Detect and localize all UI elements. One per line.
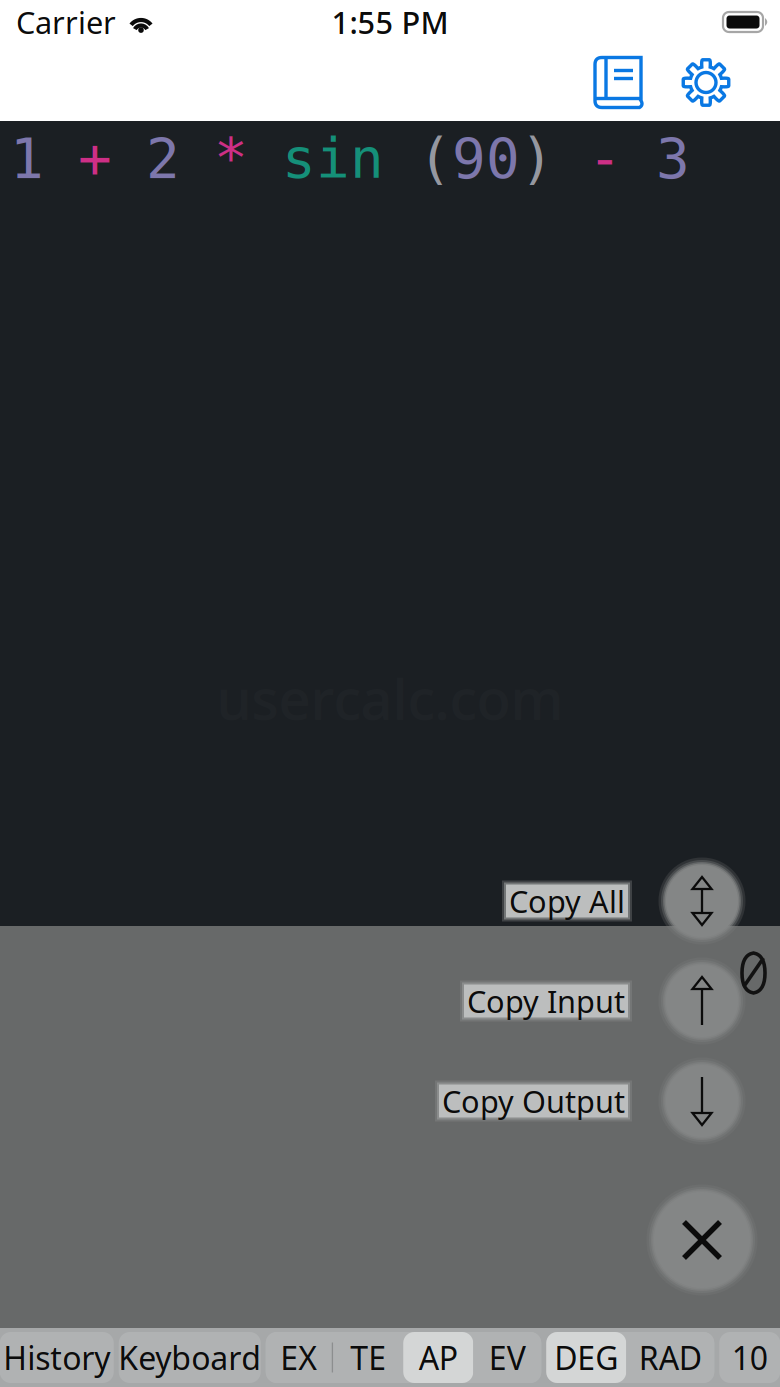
button[interactable]: History xyxy=(581,44,655,121)
button[interactable]: History xyxy=(0,1332,114,1383)
button[interactable]: Copy All xyxy=(660,859,744,943)
staticText: AP xyxy=(419,1336,458,1379)
staticText: EV xyxy=(489,1336,526,1379)
button[interactable]: 10 xyxy=(719,1332,780,1383)
staticText: Carrier xyxy=(16,2,116,42)
staticText: Copy All xyxy=(509,881,625,921)
staticText: DEG xyxy=(554,1336,618,1379)
button[interactable]: EX xyxy=(266,1332,332,1383)
staticText: RAD xyxy=(639,1336,702,1379)
staticText: sin xyxy=(282,126,418,190)
button[interactable]: DEG xyxy=(546,1332,626,1383)
staticText: 10 xyxy=(732,1336,768,1379)
staticText: Copy Input xyxy=(467,981,625,1021)
staticText: 1 xyxy=(10,126,78,190)
staticText: History xyxy=(3,1336,110,1379)
staticText: ( xyxy=(418,126,452,190)
button[interactable]: Copy Input xyxy=(660,959,744,1043)
staticText: - xyxy=(588,126,656,190)
button[interactable]: Copy Output xyxy=(435,1080,632,1121)
staticText: 2 xyxy=(146,126,214,190)
staticText: TE xyxy=(350,1336,386,1379)
button[interactable]: Clear xyxy=(648,1186,756,1294)
button[interactable]: AP xyxy=(403,1332,473,1383)
staticText: EX xyxy=(280,1336,317,1379)
staticText: 3 xyxy=(656,126,690,190)
button[interactable]: Copy Input xyxy=(460,980,632,1021)
button[interactable]: TE xyxy=(333,1332,403,1383)
button[interactable]: EV xyxy=(473,1332,541,1383)
staticText: Copy Output xyxy=(442,1081,625,1121)
button[interactable]: Copy Output xyxy=(660,1059,744,1143)
staticText: ) xyxy=(520,126,588,190)
staticText: + xyxy=(78,126,146,190)
staticText: Keyboard xyxy=(118,1336,261,1379)
button[interactable]: Keyboard xyxy=(119,1332,261,1383)
button[interactable]: RAD xyxy=(626,1332,714,1383)
button[interactable]: Copy All xyxy=(502,880,632,921)
button[interactable]: Settings xyxy=(669,44,743,121)
staticText: * xyxy=(214,126,282,190)
staticText: 1:55 PM xyxy=(331,2,448,42)
staticText: 90 xyxy=(452,126,520,190)
